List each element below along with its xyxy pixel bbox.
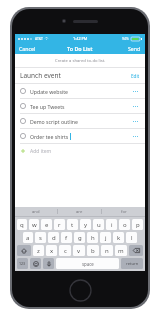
button[interactable]: More options bbox=[131, 89, 140, 94]
staticText: q bbox=[20, 221, 24, 229]
staticText: g bbox=[78, 234, 82, 242]
button[interactable]: h bbox=[87, 232, 98, 243]
button[interactable]: x bbox=[46, 245, 57, 256]
button[interactable]: k bbox=[113, 232, 124, 243]
button[interactable]: e bbox=[41, 219, 52, 230]
staticText: space bbox=[82, 261, 94, 267]
button[interactable]: Dictate bbox=[43, 258, 54, 269]
button[interactable]: are bbox=[58, 207, 101, 216]
button[interactable]: for bbox=[102, 207, 145, 216]
staticText: w bbox=[32, 221, 37, 229]
staticText: Create a shared to-do list. bbox=[55, 58, 106, 64]
button[interactable]: Cancel bbox=[15, 43, 40, 54]
staticText: o bbox=[123, 221, 127, 229]
staticText: Send bbox=[128, 45, 141, 52]
button[interactable]: 123 bbox=[17, 258, 28, 269]
staticText: p bbox=[136, 221, 140, 229]
staticText: r bbox=[58, 221, 61, 229]
staticText: h bbox=[91, 234, 95, 242]
button[interactable]: r bbox=[54, 219, 65, 230]
button[interactable]: z bbox=[33, 245, 44, 256]
button[interactable]: v bbox=[73, 245, 85, 256]
button[interactable]: Launch event bbox=[15, 68, 145, 83]
staticText: b bbox=[91, 247, 95, 255]
staticText: n bbox=[105, 247, 109, 255]
button[interactable]: g bbox=[74, 232, 85, 243]
button[interactable]: p bbox=[132, 219, 143, 230]
button[interactable]: m bbox=[115, 245, 127, 256]
staticText: e bbox=[45, 221, 49, 229]
staticText: x bbox=[50, 247, 54, 255]
staticText: d bbox=[52, 234, 56, 242]
staticText: u bbox=[97, 221, 101, 229]
staticText: AT&T bbox=[35, 36, 43, 41]
staticText: 94% bbox=[122, 36, 129, 41]
button[interactable]: Add item bbox=[15, 144, 145, 158]
staticText: f bbox=[65, 234, 68, 242]
staticText: z bbox=[37, 247, 40, 255]
staticText: Cancel bbox=[19, 45, 36, 52]
button[interactable]: a bbox=[23, 232, 33, 243]
staticText: Order tee shirts bbox=[30, 133, 69, 140]
button[interactable]: c bbox=[59, 245, 71, 256]
button[interactable]: return bbox=[121, 258, 143, 269]
button[interactable]: space bbox=[56, 258, 119, 269]
button[interactable]: Toggle Tee up Tweets bbox=[15, 99, 145, 113]
button[interactable]: Toggle Order tee shirts bbox=[15, 129, 145, 143]
button[interactable]: f bbox=[61, 232, 72, 243]
other: Add item bbox=[20, 148, 26, 154]
button[interactable]: and bbox=[15, 207, 57, 216]
staticText: return bbox=[126, 261, 139, 267]
button[interactable]: y bbox=[80, 219, 91, 230]
button[interactable]: i bbox=[106, 219, 117, 230]
button[interactable]: Send bbox=[124, 43, 145, 54]
button[interactable]: l bbox=[126, 232, 137, 243]
staticText: are bbox=[76, 209, 83, 215]
staticText: for bbox=[121, 209, 127, 215]
button[interactable]: s bbox=[35, 232, 46, 243]
button[interactable]: t bbox=[67, 219, 78, 230]
button[interactable]: u bbox=[93, 219, 104, 230]
button[interactable]: q bbox=[17, 219, 27, 230]
button[interactable]: d bbox=[48, 232, 59, 243]
staticText: Tee up Tweets bbox=[30, 103, 65, 110]
button[interactable]: Emoji bbox=[30, 258, 41, 269]
button[interactable]: More options bbox=[131, 104, 140, 109]
staticText: s bbox=[39, 234, 42, 242]
staticText: v bbox=[77, 247, 81, 255]
button[interactable]: More options bbox=[131, 134, 140, 139]
staticText: i bbox=[111, 221, 113, 229]
button[interactable]: b bbox=[87, 245, 99, 256]
button[interactable]: Shift bbox=[17, 245, 31, 256]
staticText: t bbox=[71, 221, 74, 229]
staticText: Demo script outline bbox=[30, 118, 78, 125]
button[interactable]: n bbox=[101, 245, 113, 256]
staticText: y bbox=[84, 221, 88, 229]
staticText: 1:42 PM bbox=[73, 36, 88, 41]
staticText: c bbox=[64, 247, 67, 255]
button[interactable]: o bbox=[119, 219, 130, 230]
staticText: Update website bbox=[30, 88, 69, 95]
staticText: and bbox=[32, 209, 40, 215]
staticText: j bbox=[105, 234, 107, 242]
staticText: l bbox=[131, 234, 133, 242]
other: Toggle Order tee shirts bbox=[20, 133, 26, 139]
button[interactable]: Backspace bbox=[129, 245, 143, 256]
other: Toggle Update website bbox=[20, 88, 26, 94]
button[interactable]: Toggle Demo script outline bbox=[15, 114, 145, 128]
staticText: m bbox=[118, 247, 124, 255]
button[interactable]: j bbox=[100, 232, 111, 243]
other: Toggle Demo script outline bbox=[20, 118, 26, 124]
button[interactable]: More options bbox=[131, 119, 140, 124]
staticText: a bbox=[26, 234, 30, 242]
other: Toggle Tee up Tweets bbox=[20, 103, 26, 109]
button[interactable]: w bbox=[29, 219, 39, 230]
staticText: To Do List bbox=[67, 45, 93, 52]
button[interactable]: Toggle Update website bbox=[15, 84, 145, 98]
staticText: Edit bbox=[131, 73, 140, 79]
staticText: 123 bbox=[19, 261, 26, 266]
staticText: Launch event bbox=[20, 71, 61, 80]
staticText: Add item bbox=[30, 148, 52, 155]
staticText: k bbox=[117, 234, 121, 242]
